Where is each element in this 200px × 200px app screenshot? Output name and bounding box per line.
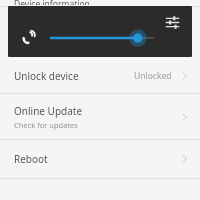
button[interactable]: Unlock device (0, 58, 200, 93)
button[interactable]: Device information (0, 0, 200, 7)
staticText: Reboot (14, 152, 48, 166)
staticText: Unlocked (134, 70, 172, 82)
staticText: Check for updates (14, 120, 78, 130)
button[interactable]: Volume slider (50, 27, 154, 49)
staticText: Unlock device (14, 69, 79, 83)
button[interactable]: Sound settings (162, 12, 182, 32)
button[interactable]: Reboot (0, 140, 200, 178)
button[interactable]: Online Update (0, 94, 200, 139)
staticText: Device information (14, 0, 90, 5)
button[interactable]: Ringer volume (18, 27, 40, 49)
staticText: Online Update (14, 104, 83, 118)
